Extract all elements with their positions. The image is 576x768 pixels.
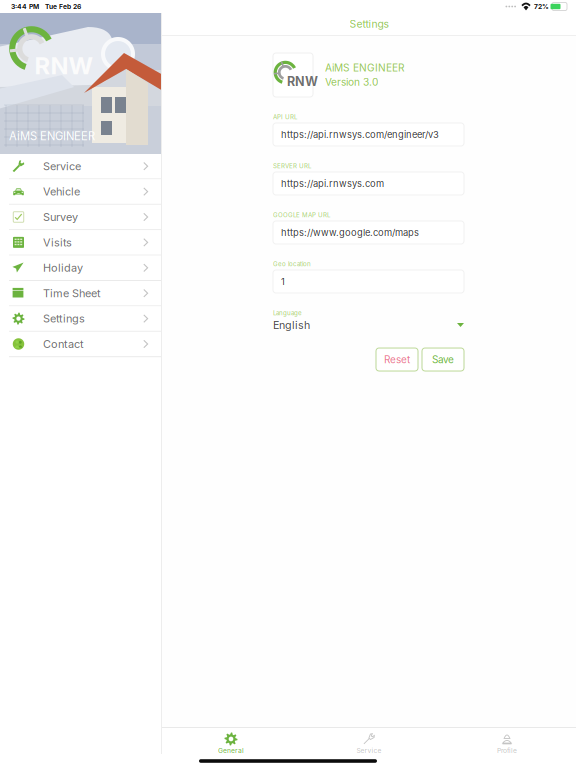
staticText: English (273, 318, 310, 331)
staticText: Contact (43, 337, 84, 351)
button[interactable]: Survey (0, 205, 161, 230)
staticText: General (218, 746, 244, 755)
button[interactable]: Save (422, 348, 464, 371)
staticText: RNW (287, 74, 318, 89)
staticText: Reset (384, 353, 410, 366)
staticText: Version 3.0 (325, 76, 378, 88)
staticText: Settings (43, 312, 85, 325)
button[interactable]: Visits (0, 230, 161, 256)
staticText: Geo location (273, 260, 311, 268)
button[interactable]: Contact (0, 332, 161, 357)
staticText: RNW (34, 51, 92, 80)
button[interactable]: Service (300, 725, 438, 756)
staticText: SERVER URL (273, 162, 311, 170)
staticText: Vehicle (43, 185, 80, 198)
staticText: Time Sheet (43, 287, 101, 300)
staticText: Service (43, 160, 81, 173)
staticText: AiMS ENGINEER (9, 129, 95, 143)
button[interactable]: Holiday (0, 256, 161, 281)
button[interactable]: English (273, 317, 464, 333)
staticText: Save (432, 353, 454, 366)
staticText: AiMS ENGINEER (325, 62, 405, 74)
staticText: Survey (43, 210, 78, 224)
staticText: Settings (349, 18, 388, 30)
staticText: 1 (281, 276, 285, 287)
staticText: API URL (273, 113, 297, 121)
staticText: Tue Feb 26 (45, 2, 81, 11)
button[interactable]: General (162, 725, 300, 756)
button[interactable]: Vehicle (0, 179, 161, 205)
staticText: Language (273, 309, 302, 317)
staticText: Holiday (43, 261, 83, 274)
staticText: https://api.rnwsys.com (281, 178, 384, 189)
staticText: GOOGLE MAP URL (273, 211, 330, 219)
staticText: 72% (534, 2, 549, 11)
staticText: Visits (43, 236, 72, 249)
staticText: Service (356, 746, 381, 755)
button[interactable]: Settings (0, 306, 161, 332)
staticText: https://www.google.com/maps (281, 227, 419, 238)
staticText: Profile (497, 746, 517, 755)
staticText: 3:44 PM (11, 2, 39, 11)
button[interactable]: Time Sheet (0, 281, 161, 306)
button[interactable]: Service (0, 154, 161, 179)
button[interactable]: Profile (438, 725, 576, 756)
button[interactable]: Reset (376, 348, 418, 371)
staticText: https://api.rnwsys.com/engineer/v3 (281, 129, 439, 140)
